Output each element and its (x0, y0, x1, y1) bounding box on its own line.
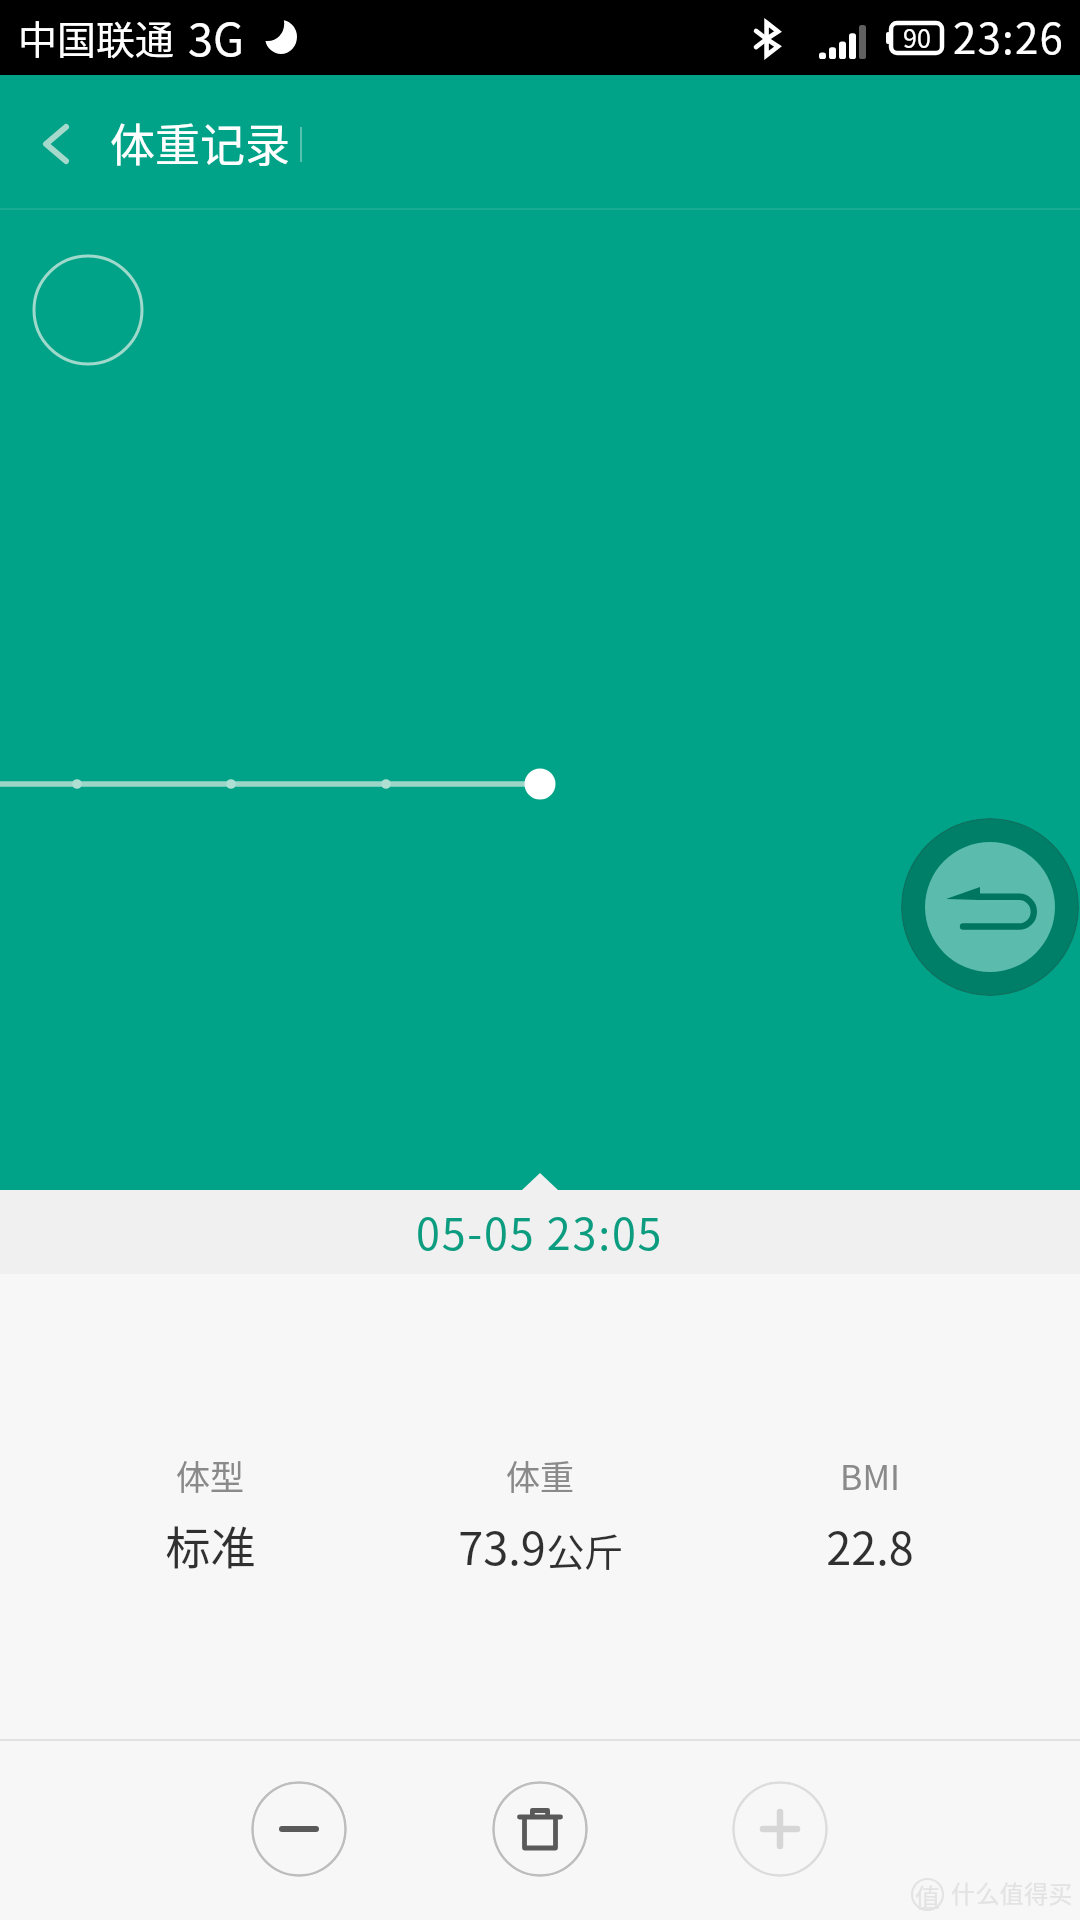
staticText: 标准 (165, 1513, 256, 1578)
button[interactable]: Delete (492, 1781, 588, 1877)
staticText: 22.8 (826, 1513, 914, 1578)
staticText: 体重 (506, 1451, 574, 1500)
staticText: 体重记录 (110, 110, 291, 175)
staticText: 体型 (176, 1451, 244, 1500)
staticText: 中国联通 (18, 9, 175, 65)
button[interactable]: Increase (732, 1781, 828, 1877)
button[interactable]: Back (0, 75, 108, 210)
staticText: 73.9 (458, 1513, 546, 1578)
staticText: 23:26 (953, 5, 1064, 66)
staticText: 公斤 (546, 1522, 623, 1577)
staticText: 3G (188, 4, 244, 69)
staticText: 05-05 23:05 (416, 1200, 664, 1262)
staticText: 90 (903, 19, 931, 55)
button[interactable]: Decrease (251, 1781, 347, 1877)
staticText: 值 (915, 1878, 941, 1911)
button[interactable]: Undo (901, 818, 1079, 996)
staticText: BMI (840, 1451, 900, 1500)
staticText: 什么值得买 (951, 1875, 1073, 1910)
